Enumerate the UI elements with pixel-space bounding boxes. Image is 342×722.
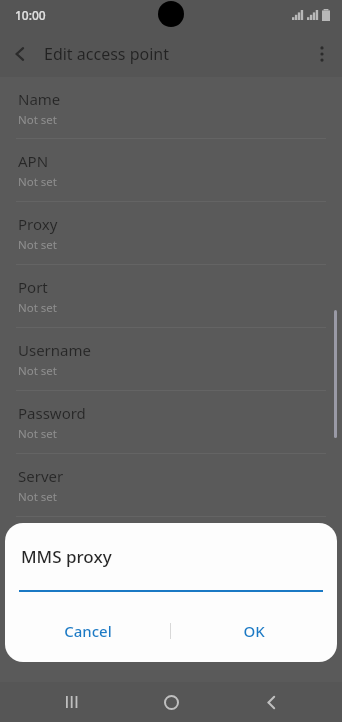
staticText: Not set bbox=[18, 237, 57, 253]
button[interactable]: Back bbox=[243, 682, 299, 722]
button[interactable]: Server bbox=[0, 454, 342, 516]
button[interactable]: Proxy bbox=[0, 202, 342, 264]
staticText: 10:00 bbox=[15, 7, 46, 23]
staticText: Edit access point bbox=[44, 43, 169, 65]
staticText: Proxy bbox=[18, 214, 58, 234]
staticText: Not set bbox=[18, 300, 57, 316]
staticText: Name bbox=[18, 89, 61, 109]
staticText: Not set bbox=[18, 552, 57, 568]
button[interactable]: Port bbox=[0, 265, 342, 327]
staticText: Username bbox=[18, 340, 91, 360]
staticText: Server bbox=[18, 466, 64, 486]
staticText: APN bbox=[18, 151, 49, 171]
staticText: MMS proxy bbox=[21, 545, 112, 568]
button[interactable]: Cancel bbox=[5, 612, 170, 650]
button[interactable]: APN bbox=[0, 139, 342, 201]
staticText: Password bbox=[18, 403, 86, 423]
button[interactable]: More options bbox=[302, 34, 342, 74]
staticText: Not set bbox=[18, 489, 57, 505]
button[interactable]: Name bbox=[0, 77, 342, 138]
button[interactable]: Home bbox=[143, 682, 199, 722]
button[interactable]: MMS proxy bbox=[0, 517, 342, 579]
button[interactable]: OK bbox=[171, 612, 337, 650]
button[interactable]: Username bbox=[0, 328, 342, 390]
staticText: Not set bbox=[18, 174, 57, 190]
staticText: Not set bbox=[18, 426, 57, 442]
button[interactable]: Recents bbox=[44, 682, 100, 722]
staticText: Not set bbox=[18, 363, 57, 379]
staticText: Not set bbox=[18, 112, 57, 128]
staticText: Port bbox=[18, 277, 48, 297]
button[interactable]: MMS port bbox=[0, 580, 342, 642]
button[interactable]: Back bbox=[0, 34, 40, 74]
staticText: Cancel bbox=[64, 621, 112, 641]
button[interactable]: Password bbox=[0, 391, 342, 453]
staticText: OK bbox=[243, 621, 265, 641]
